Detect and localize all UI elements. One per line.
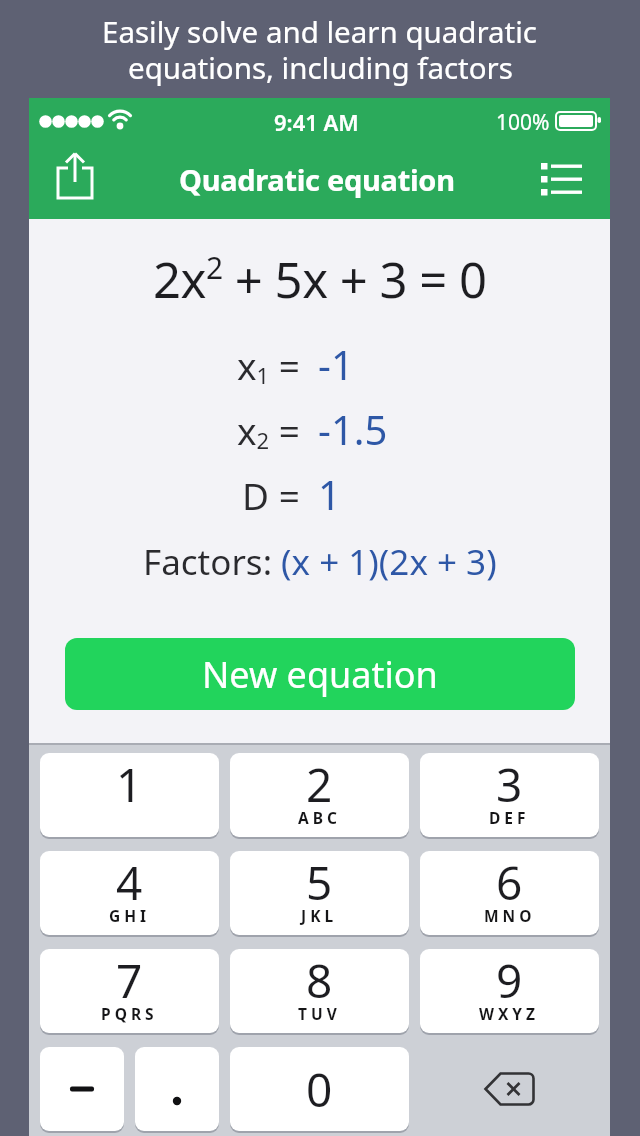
- button[interactable]: 5: [230, 851, 409, 935]
- button[interactable]: 2: [230, 753, 409, 837]
- staticText: 8: [306, 949, 333, 1009]
- staticText: DEF: [489, 807, 530, 828]
- staticText: Quadratic equation: [179, 160, 455, 198]
- staticText: 2x2 + 5x + 3 = 0: [153, 246, 487, 308]
- staticText: WXYZ: [479, 1003, 540, 1024]
- staticText: 2: [306, 753, 333, 813]
- staticText: D =: [242, 470, 310, 516]
- button[interactable]: 4: [40, 851, 219, 935]
- button[interactable]: 1: [40, 753, 219, 837]
- button[interactable]: New equation: [65, 638, 575, 710]
- staticText: x1 =: [237, 340, 310, 386]
- staticText: -1: [318, 337, 354, 387]
- button[interactable]: 0: [230, 1047, 409, 1131]
- staticText: PQRS: [101, 1003, 158, 1024]
- staticText: 9: [496, 949, 523, 1009]
- staticText: Easily solve and learn quadratic: [102, 11, 538, 51]
- staticText: ABC: [298, 807, 341, 828]
- button[interactable]: 8: [230, 949, 409, 1033]
- staticText: -1.5: [318, 402, 388, 452]
- staticText: Factors: (x + 1)(2x + 3): [143, 538, 497, 586]
- staticText: 0: [306, 1058, 333, 1121]
- button[interactable]: 7: [40, 949, 219, 1033]
- staticText: 1: [318, 467, 341, 517]
- staticText: 1: [116, 753, 143, 813]
- staticText: 9:41 AM: [274, 107, 359, 137]
- staticText: GHI: [109, 905, 151, 926]
- staticText: 7: [116, 949, 143, 1009]
- button[interactable]: [135, 1047, 219, 1131]
- staticText: 3: [496, 753, 523, 813]
- staticText: MNO: [484, 905, 536, 926]
- button[interactable]: 9: [420, 949, 599, 1033]
- staticText: 100%: [496, 108, 550, 137]
- staticText: 4: [116, 851, 143, 911]
- staticText: 5: [306, 851, 333, 911]
- button[interactable]: [536, 156, 588, 202]
- staticText: equations, including factors: [128, 47, 513, 87]
- staticText: 6: [496, 851, 523, 911]
- button[interactable]: 6: [420, 851, 599, 935]
- staticText: JKL: [301, 905, 338, 926]
- button[interactable]: [420, 1047, 599, 1131]
- staticText: x2 =: [237, 405, 310, 451]
- button[interactable]: [46, 148, 104, 206]
- button[interactable]: [40, 1047, 124, 1131]
- button[interactable]: 3: [420, 753, 599, 837]
- staticText: New equation: [202, 650, 438, 699]
- staticText: TUV: [298, 1003, 341, 1024]
